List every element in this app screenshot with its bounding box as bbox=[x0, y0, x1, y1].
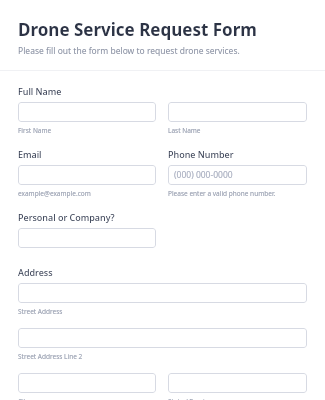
staticText: Personal or Company? bbox=[18, 211, 115, 223]
button[interactable] bbox=[168, 373, 307, 393]
staticText: Street Address Line 2 bbox=[18, 352, 83, 361]
staticText: Email bbox=[18, 148, 42, 160]
staticText: example@example.com bbox=[18, 189, 156, 198]
button[interactable] bbox=[18, 102, 156, 122]
button[interactable] bbox=[18, 283, 307, 303]
staticText: (000) 000-0000 bbox=[174, 169, 233, 181]
staticText: Last Name bbox=[168, 126, 307, 135]
staticText: Please fill out the form below to reques… bbox=[18, 45, 240, 57]
button[interactable] bbox=[18, 328, 307, 348]
button[interactable]: (000) 000-0000 bbox=[168, 165, 307, 185]
staticText: Address bbox=[18, 266, 53, 278]
staticText: Full Name bbox=[18, 85, 62, 97]
staticText: Drone Service Request Form bbox=[18, 18, 257, 41]
button[interactable] bbox=[18, 165, 156, 185]
staticText: City bbox=[18, 397, 156, 400]
button[interactable] bbox=[168, 102, 307, 122]
staticText: Please enter a valid phone number. bbox=[168, 189, 307, 198]
staticText: Street Address bbox=[18, 307, 63, 316]
button[interactable] bbox=[18, 228, 156, 248]
staticText: First Name bbox=[18, 126, 156, 135]
staticText: Phone Number bbox=[168, 148, 234, 160]
button[interactable] bbox=[18, 373, 156, 393]
staticText: State / Province bbox=[168, 397, 307, 400]
